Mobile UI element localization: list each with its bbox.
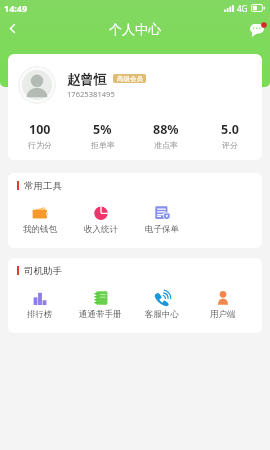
button[interactable]: 88% (134, 116, 198, 155)
button[interactable]: 通通带手册 (70, 283, 131, 323)
staticText: 赵曾恒 (67, 71, 107, 88)
button[interactable]: 我的钱包 (10, 198, 70, 238)
button[interactable]: 5.0 (198, 116, 262, 155)
button[interactable]: 收入统计 (70, 198, 131, 238)
button[interactable]: 用户端 (192, 283, 253, 323)
staticText: 常用工具 (24, 180, 62, 192)
button[interactable]: 电子保单 (131, 198, 192, 238)
staticText: 5.0 (221, 121, 239, 138)
staticText: 客服中心 (145, 309, 179, 320)
button[interactable]: 客服中心 (131, 283, 192, 323)
staticText: 17625381495 (67, 89, 115, 99)
staticText: 个人中心 (109, 21, 161, 37)
staticText: 电子保单 (145, 224, 179, 235)
staticText: 拒单率 (91, 140, 115, 150)
staticText: 通通带手册 (79, 309, 122, 320)
button[interactable]: 排行榜 (10, 283, 70, 323)
button[interactable]: 赵曾恒 (18, 54, 262, 116)
staticText: 准点率 (154, 140, 178, 150)
button[interactable]: 100 (8, 116, 71, 155)
staticText: 100 (29, 121, 51, 138)
staticText: 评分 (222, 140, 238, 150)
staticText: 14:49 (4, 2, 28, 14)
staticText: 5% (93, 121, 112, 138)
button[interactable]: Messages (249, 21, 267, 37)
staticText: 排行榜 (27, 309, 53, 320)
staticText: 88% (153, 121, 179, 138)
button[interactable]: Back (0, 16, 25, 41)
staticText: 行为分 (28, 140, 52, 150)
staticText: 收入统计 (84, 224, 118, 235)
staticText: 司机助手 (24, 265, 62, 277)
staticText: 用户端 (210, 309, 236, 320)
staticText: 我的钱包 (23, 224, 57, 235)
staticText: 4G (237, 3, 248, 14)
staticText: 高级会员 (117, 75, 143, 83)
button[interactable]: 5% (71, 116, 134, 155)
